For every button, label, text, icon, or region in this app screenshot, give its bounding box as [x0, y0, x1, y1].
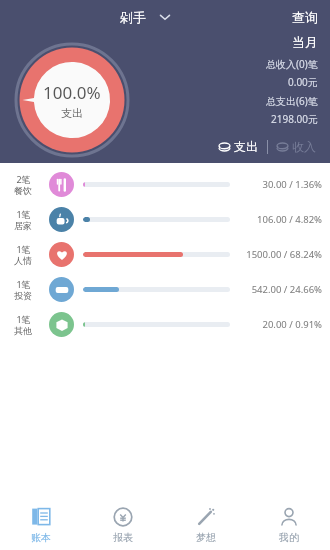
- button[interactable]: 我的: [247, 500, 330, 550]
- staticText: 20.00 / 0.91%: [262, 318, 322, 331]
- staticText: 1笔: [16, 278, 31, 290]
- staticText: 报表: [113, 531, 133, 544]
- staticText: 100.0%: [43, 81, 101, 104]
- staticText: 1笔: [16, 243, 31, 255]
- staticText: 当月: [292, 34, 318, 50]
- staticText: 其他: [14, 325, 32, 336]
- staticText: 支出: [234, 139, 258, 154]
- staticText: 0.00元: [288, 75, 318, 89]
- staticText: 2笔: [16, 173, 31, 185]
- staticText: 收入: [292, 139, 316, 154]
- button[interactable]: 1笔: [0, 272, 330, 307]
- staticText: 餐饮: [14, 185, 32, 196]
- button[interactable]: 1笔: [0, 307, 330, 342]
- button[interactable]: 账本: [0, 500, 82, 550]
- staticText: 1500.00 / 68.24%: [246, 248, 322, 261]
- staticText: 30.00 / 1.36%: [262, 178, 322, 191]
- staticText: 居家: [14, 220, 32, 231]
- button[interactable]: 剁手: [114, 6, 178, 28]
- staticText: 2198.00元: [271, 112, 318, 126]
- button[interactable]: 报表: [82, 500, 164, 550]
- staticText: 1笔: [16, 208, 31, 220]
- button[interactable]: 支出: [215, 136, 262, 157]
- button[interactable]: 收入: [273, 136, 320, 157]
- staticText: 梦想: [196, 531, 216, 544]
- staticText: 剁手: [120, 9, 146, 25]
- staticText: 我的: [279, 531, 299, 544]
- button[interactable]: 2笔: [0, 167, 330, 202]
- staticText: 总收入(0)笔: [266, 57, 318, 71]
- button[interactable]: 1笔: [0, 202, 330, 237]
- button[interactable]: 1笔: [0, 237, 330, 272]
- button[interactable]: 梦想: [164, 500, 247, 550]
- staticText: 542.00 / 24.66%: [251, 283, 322, 296]
- staticText: 人情: [14, 255, 32, 266]
- staticText: 106.00 / 4.82%: [257, 213, 322, 226]
- staticText: 总支出(6)笔: [266, 94, 318, 108]
- button[interactable]: 查询: [292, 9, 330, 25]
- staticText: 投资: [14, 290, 32, 301]
- staticText: 账本: [31, 531, 51, 544]
- staticText: 1笔: [16, 313, 31, 325]
- staticText: 支出: [61, 106, 83, 120]
